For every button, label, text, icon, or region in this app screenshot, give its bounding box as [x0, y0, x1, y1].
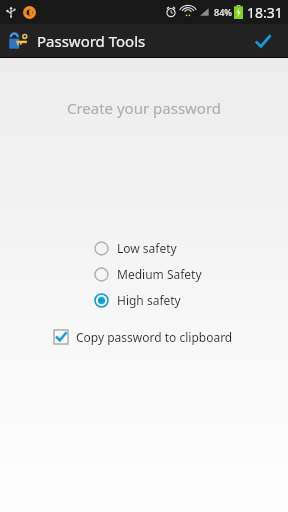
staticText: Password Tools [37, 31, 146, 51]
button[interactable]: High safety [92, 287, 183, 313]
staticText: Create your password [0, 98, 288, 118]
staticText: 18:31 [247, 3, 283, 22]
staticText: 84% [214, 6, 232, 18]
staticText: Medium Safety [117, 266, 202, 282]
staticText: High safety [117, 292, 181, 308]
button[interactable]: Medium Safety [92, 261, 204, 287]
button[interactable]: Low safety [92, 235, 179, 261]
staticText: Low safety [117, 240, 177, 256]
button[interactable]: Done [246, 24, 280, 58]
button[interactable]: Copy password to clipboard [52, 325, 235, 349]
staticText: Copy password to clipboard [76, 329, 233, 345]
